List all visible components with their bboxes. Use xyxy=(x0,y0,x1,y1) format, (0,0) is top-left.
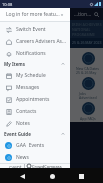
button[interactable]: Careers Advisers Asso… xyxy=(0,35,70,47)
button[interactable]: Log in for more features! xyxy=(0,8,70,21)
staticText: GAA Events xyxy=(16,142,45,149)
button[interactable]: Back xyxy=(15,169,29,183)
staticText: Jobs Advertised xyxy=(79,91,97,100)
staticText: Log in for more features! xyxy=(6,11,60,18)
button[interactable]: Home xyxy=(45,169,59,183)
staticText: My Schedule xyxy=(16,72,46,79)
staticText: IRISH ACHIEVERS xyxy=(72,22,102,27)
staticText: cvent xyxy=(9,164,22,168)
staticText: …tion… xyxy=(74,11,92,18)
staticText: My Items xyxy=(4,61,61,67)
staticText: App FAQs xyxy=(80,116,96,121)
staticText: Contacts xyxy=(16,108,37,115)
button[interactable]: App FAQs xyxy=(74,101,102,122)
button[interactable]: Appointments xyxy=(0,93,70,105)
button[interactable]: News xyxy=(0,151,70,163)
button[interactable]: My Schedule xyxy=(0,69,70,81)
button[interactable]: Switch Event xyxy=(0,23,70,35)
staticText: CrowdCompass xyxy=(32,164,62,168)
staticText: Notifications xyxy=(16,50,46,57)
staticText: Messages xyxy=(16,84,40,91)
staticText: News xyxy=(16,154,29,161)
button[interactable]: Search xyxy=(92,10,100,18)
staticText: Notes xyxy=(16,120,30,127)
button[interactable]: Notifications xyxy=(0,47,70,59)
staticText: Event Guide xyxy=(4,131,61,137)
staticText: Switch Event xyxy=(16,26,46,33)
staticText: Appointments xyxy=(16,96,50,103)
button[interactable]: Event Guide xyxy=(0,129,70,139)
button[interactable]: Messages xyxy=(0,81,70,93)
staticText: 25 & 26 MAY 2023 xyxy=(72,40,102,45)
staticText: NATIONAL PROGRAMME xyxy=(72,27,103,37)
button[interactable]: My Items xyxy=(0,59,70,69)
staticText: Careers Advisers Asso… xyxy=(16,38,67,45)
button[interactable]: GAA Events xyxy=(0,139,70,151)
staticText: New CA Dates 25 & 26 May xyxy=(76,66,100,75)
staticText: 10:08 xyxy=(2,2,13,7)
button[interactable]: Notes xyxy=(0,117,70,129)
button[interactable]: Jobs Advertised xyxy=(74,76,102,101)
button[interactable]: New CA Dates 25 & 26 May xyxy=(74,51,102,76)
button[interactable]: Contacts xyxy=(0,105,70,117)
button[interactable]: Recent apps xyxy=(74,169,88,183)
